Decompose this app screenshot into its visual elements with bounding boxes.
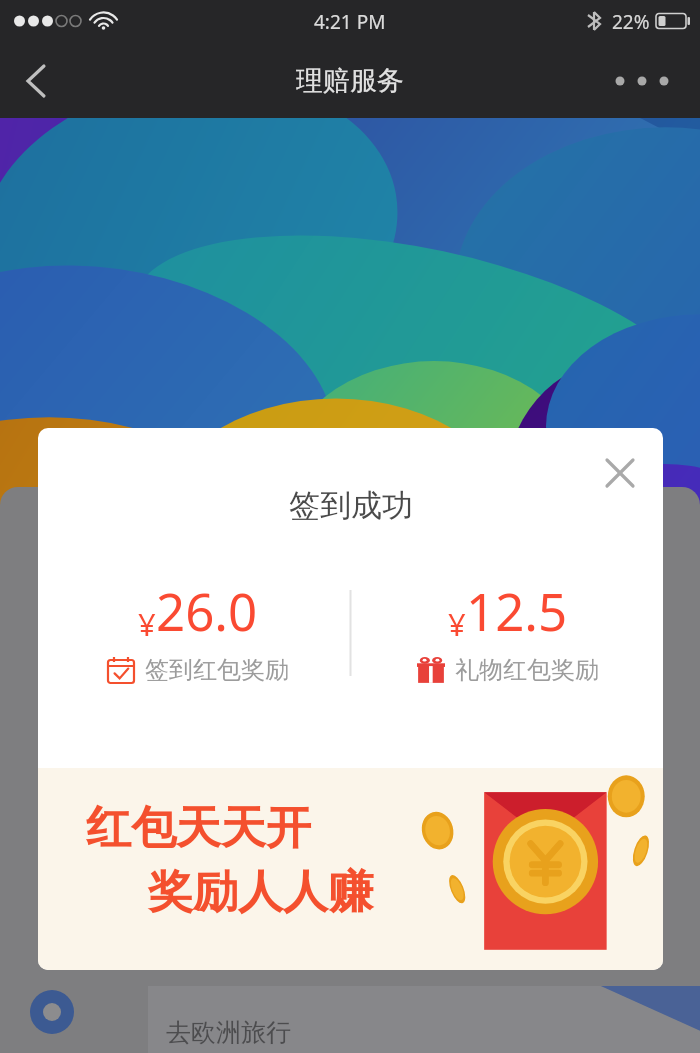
staticText: 签到红包奖励	[145, 655, 289, 685]
staticText: 26.0	[156, 576, 258, 645]
staticText: 4:21 PM	[314, 9, 386, 35]
staticText: 12.5	[466, 576, 568, 645]
button[interactable]: More options	[602, 56, 682, 106]
staticText: 礼物红包奖励	[455, 655, 599, 685]
staticText: 签到成功	[289, 486, 413, 525]
staticText: 奖励人人赚	[148, 864, 373, 921]
staticText: 22%	[612, 9, 650, 35]
button[interactable]: 去欧洲旅行	[148, 986, 700, 1053]
staticText: ¥	[448, 603, 466, 645]
staticText: 红包天天开	[86, 800, 311, 857]
staticText: 理赔服务	[296, 64, 404, 98]
staticText: 去欧洲旅行	[166, 1017, 291, 1048]
staticText: ¥	[138, 603, 156, 645]
button[interactable]: Back	[0, 50, 62, 112]
button[interactable]: Close	[589, 442, 651, 504]
